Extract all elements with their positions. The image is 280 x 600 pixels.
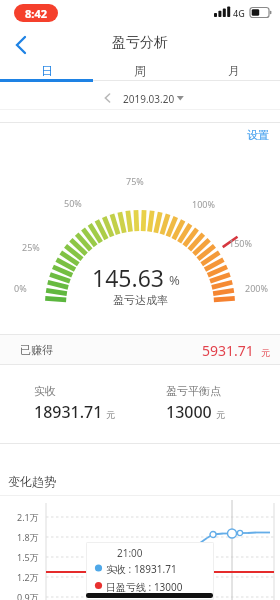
staticText: 200% [245,282,268,294]
staticText: 变化趋势 [8,474,56,489]
staticText: 21:00 [117,546,143,560]
staticText: 盈亏达成率 [113,293,168,307]
staticText: 元 [216,409,225,420]
staticText: 145.63 [92,262,164,293]
staticText: 25% [22,241,40,253]
staticText: 100% [192,198,215,210]
button[interactable] [8,32,36,58]
staticText: 1.5万 [17,551,39,563]
staticText: 2.1万 [17,511,39,523]
staticText: 1.2万 [17,571,39,583]
button[interactable]: 日 [0,60,93,81]
staticText: % [169,271,180,289]
staticText: 盈亏平衡点 [166,384,221,398]
staticText: 1.8万 [17,531,39,543]
staticText: 0.9万 [17,591,39,600]
staticText: 4G [233,7,245,19]
staticText: 75% [126,175,144,187]
staticText: 已赚得 [20,343,53,357]
staticText: 元 [106,409,115,420]
staticText: 实收 [34,384,56,398]
staticText: 18931.71 [34,401,103,423]
staticText: 2019.03.20 [123,92,175,106]
staticText: 元 [261,347,270,358]
staticText: 8:42 [25,6,47,21]
staticText: 日盈亏线 : 13000 [106,580,183,594]
staticText: 设置 [247,128,269,142]
button[interactable] [90,88,190,108]
staticText: 日 [41,63,53,78]
staticText: 实收 : 18931.71 [106,562,177,576]
staticText: 周 [134,63,146,78]
button[interactable]: 周 [93,60,186,81]
button[interactable]: 月 [187,60,280,81]
staticText: 13000 [166,401,212,423]
staticText: 月 [228,63,240,78]
staticText: 5931.71 [202,341,254,360]
staticText: 50% [64,197,82,209]
button[interactable]: 设置 [247,128,269,142]
staticText: 盈亏分析 [112,34,168,52]
staticText: 0% [14,282,27,294]
staticText: 150% [229,237,252,249]
button[interactable]: 已赚得 [0,334,280,365]
